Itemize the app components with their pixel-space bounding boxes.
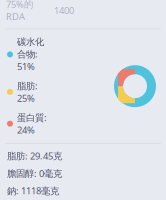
staticText: 碳水化合物: 51% bbox=[17, 36, 44, 73]
staticText: 膽固醇: 0毫克 bbox=[7, 167, 62, 179]
staticText: 75%的RDA bbox=[6, 0, 33, 23]
staticText: 鈉: 1118毫克 bbox=[7, 184, 59, 197]
staticText: 1400 bbox=[54, 4, 74, 16]
staticText: 脂肪: 29.45克 bbox=[7, 150, 62, 162]
staticText: 蛋白質: 24% bbox=[17, 111, 47, 136]
staticText: 脂肪: 25% bbox=[17, 79, 38, 104]
